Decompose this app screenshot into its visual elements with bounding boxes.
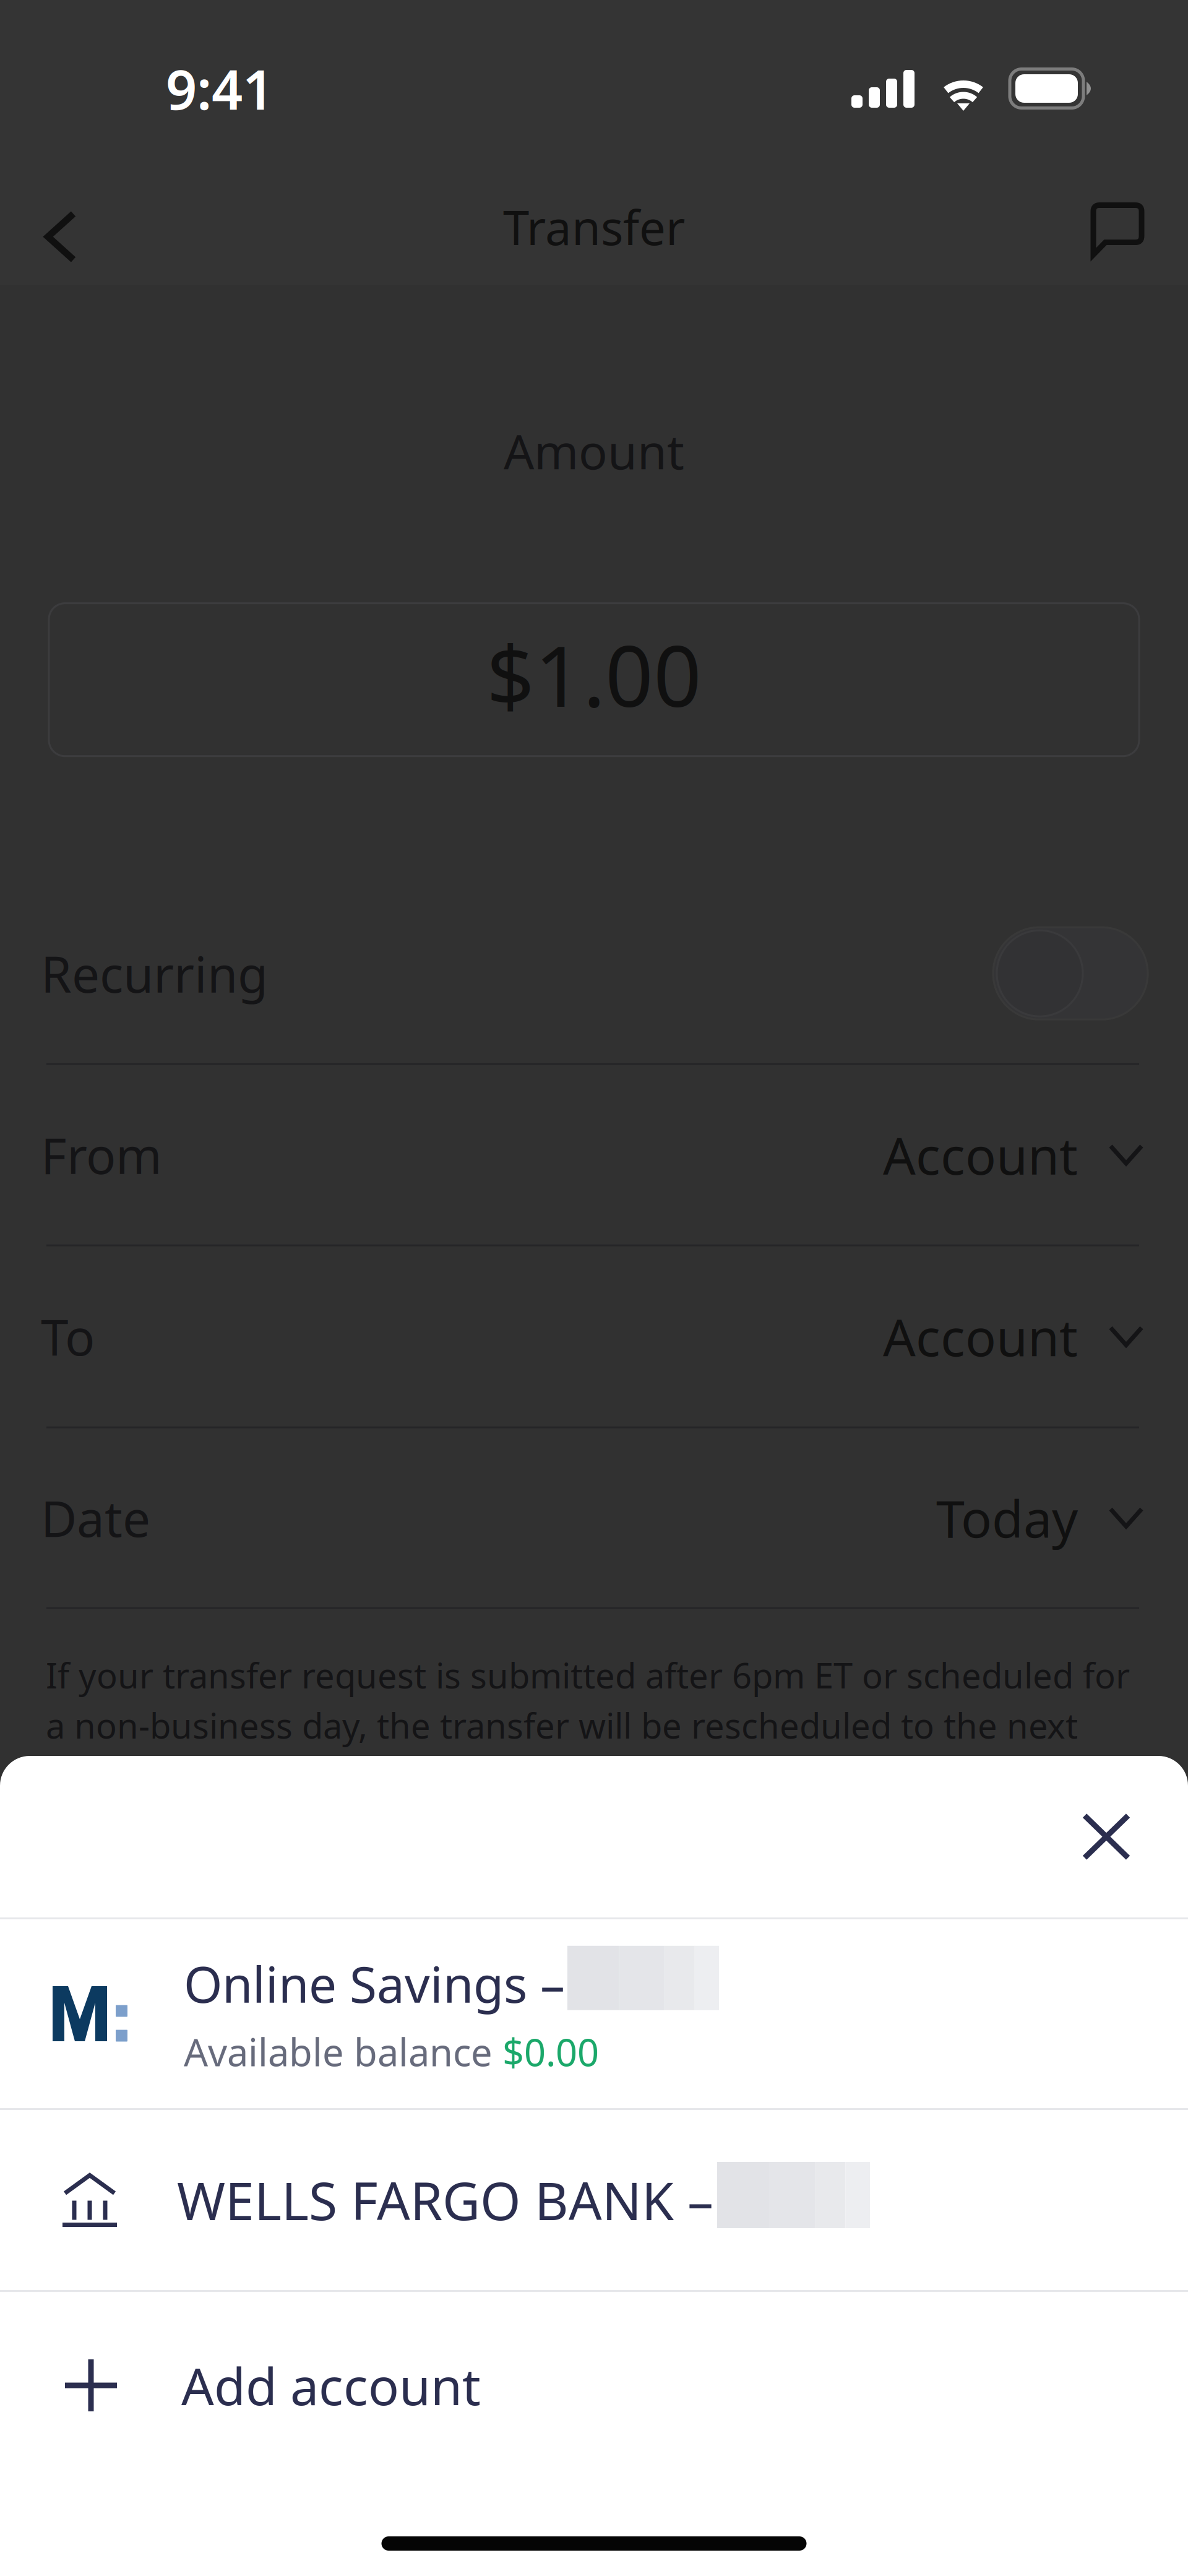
staticText: 9:41	[166, 52, 273, 125]
button[interactable]: Online Savings –	[0, 1919, 1188, 2108]
button[interactable]: WELLS FARGO BANK –	[0, 2110, 1188, 2290]
staticText: If your transfer request is submitted af…	[46, 1652, 1130, 1698]
button[interactable]: To	[0, 1246, 1188, 1428]
staticText: Today	[936, 1484, 1078, 1552]
button[interactable]: Date	[0, 1428, 1188, 1609]
button[interactable]: Add account	[0, 2292, 1188, 2479]
staticText: WELLS FARGO BANK –	[177, 2165, 727, 2234]
button[interactable]: Messages	[1074, 175, 1161, 285]
staticText: Amount	[504, 419, 684, 483]
staticText: Add account	[181, 2351, 481, 2419]
staticText: Account	[883, 1121, 1078, 1189]
staticText: $1.00	[486, 618, 702, 730]
staticText: Account	[883, 1302, 1078, 1370]
button[interactable]: From	[0, 1065, 1188, 1246]
staticText: Transfer	[503, 196, 685, 258]
staticText: Available balance	[184, 2026, 502, 2077]
staticText: Date	[41, 1485, 150, 1551]
staticText: Recurring	[41, 941, 268, 1006]
staticText: From	[41, 1122, 162, 1188]
staticText: To	[41, 1304, 95, 1369]
staticText: $0.00	[502, 2026, 599, 2077]
button[interactable]: Back	[17, 175, 104, 285]
button[interactable]: Close	[1054, 1784, 1159, 1889]
staticText: a non-business day, the transfer will be…	[46, 1702, 1078, 1748]
staticText: Online Savings –	[184, 1951, 578, 2016]
